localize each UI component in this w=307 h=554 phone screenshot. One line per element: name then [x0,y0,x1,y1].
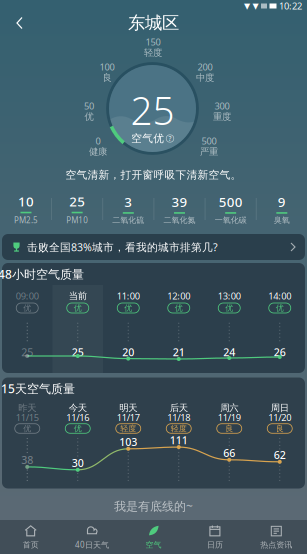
staticText: 空气清新，打开窗呼吸下清新空气。 [65,168,241,181]
staticText: 11/19 [218,411,241,424]
staticText: 20 [122,345,134,359]
staticText: 300 [214,100,229,112]
staticText: 击败全国83%城市，看我的城市排第几? [27,240,218,254]
staticText: 优 [84,111,93,122]
staticText: 良 [276,424,284,433]
staticText: 100 [99,61,114,73]
staticText: 空气优 [131,132,164,145]
staticText: 首页 [23,540,39,550]
staticText: 0 [95,135,100,147]
staticText: 良 [225,424,233,433]
staticText: 11:00 [117,290,140,302]
staticText: 热点资讯 [260,540,292,550]
staticText: ▼ [252,1,258,11]
staticText: 10 [18,192,34,210]
staticText: 轻度 [144,47,162,58]
staticText: 25 [72,345,84,359]
staticText: 健康 [89,146,107,157]
staticText: 今天 [69,402,87,414]
staticText: 臭氧 [274,215,290,225]
button[interactable]: 热点资讯 [246,520,307,554]
staticText: 11/16 [66,411,89,424]
staticText: 优 [175,303,183,313]
staticText: 11/17 [117,411,140,424]
staticText: 优 [124,303,132,313]
staticText: 东城区 [128,12,179,34]
staticText: 3 [124,193,132,211]
staticText: 500 [219,193,243,211]
staticText: 明天 [119,402,137,414]
staticText: 15天空气质量 [1,380,75,396]
staticText: 周日 [271,402,289,414]
staticText: 10:22 [279,0,302,12]
staticText: 良 [102,72,111,83]
staticText: 48小时空气质量 [0,266,84,282]
staticText: 13:00 [218,290,241,302]
staticText: 当前 [69,290,87,302]
staticText: 50 [84,100,94,112]
staticText: PM2.5 [14,215,38,225]
staticText: 优 [23,303,31,313]
staticText: 轻度 [171,424,187,433]
staticText: 09:00 [16,290,39,302]
staticText: 二氧化氮 [163,215,195,225]
staticText: 25 [69,192,85,210]
staticText: 优 [23,424,31,433]
staticText: 优 [74,424,82,433]
staticText: 25 [130,84,174,136]
staticText: 日历 [207,540,223,550]
staticText: 我是有底线的~ [114,498,193,514]
staticText: 24 [223,345,235,359]
staticText: 中度 [196,72,214,83]
staticText: 后天 [170,402,188,414]
staticText: ? [168,134,171,143]
staticText: 一氧化碳 [215,215,247,225]
staticText: 66 [223,446,235,460]
staticText: 62 [274,448,286,462]
staticText: ▼ [244,1,250,11]
staticText: 11/20 [268,411,291,424]
staticText: 38 [21,453,33,467]
staticText: 二氧化硫 [112,215,144,225]
staticText: 500 [201,135,216,147]
staticText: 200 [197,61,212,73]
button[interactable]: 40日天气 [61,520,123,554]
staticText: 39 [171,193,187,211]
button[interactable]: 首页 [0,520,61,554]
staticText: 111 [170,433,188,447]
button[interactable]: 空气 [123,520,184,554]
staticText: 25 [21,345,33,359]
staticText: 优 [74,303,82,313]
staticText: 昨天 [18,402,36,414]
staticText: 150 [145,36,160,48]
staticText: 9 [278,193,286,211]
staticText: 40日天气 [75,539,109,550]
staticText: 26 [274,345,286,359]
button[interactable]: 返回 [5,12,35,34]
staticText: 14:00 [268,290,291,302]
staticText: 空气 [145,540,161,550]
staticText: 21 [173,345,185,359]
staticText: 重度 [213,111,231,122]
staticText: 严重 [200,146,218,157]
staticText: 轻度 [120,424,136,433]
staticText: PM10 [66,215,88,225]
staticText: 11/18 [167,411,190,424]
staticText: 30 [72,456,84,470]
staticText: 11/15 [16,411,39,424]
staticText: 周六 [220,402,238,414]
button[interactable]: 击败全国83%城市，看我的城市排第几? [2,234,305,260]
staticText: 优 [276,303,284,313]
button[interactable]: 日历 [184,520,246,554]
staticText: 优 [225,303,233,313]
staticText: 12:00 [167,290,190,302]
staticText: 103 [119,435,137,449]
